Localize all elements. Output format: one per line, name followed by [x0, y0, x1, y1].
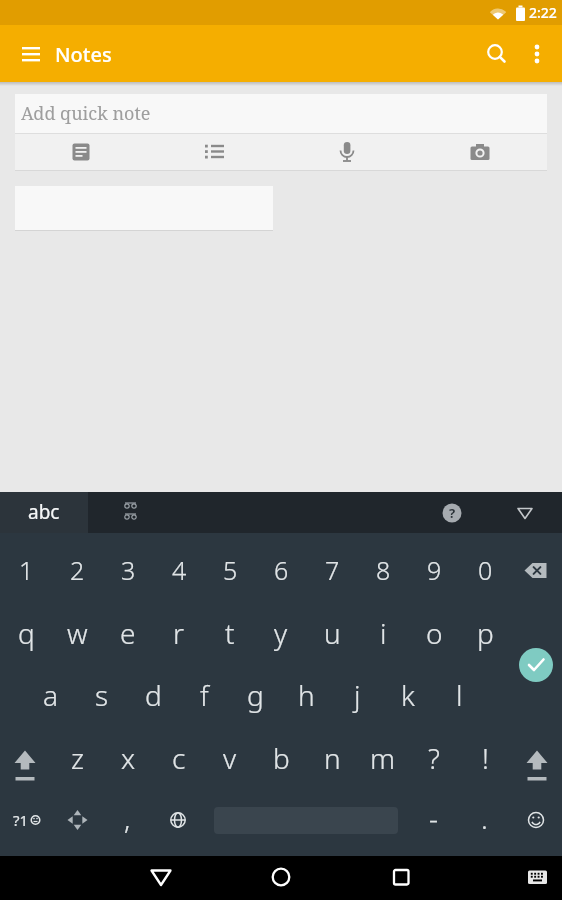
staticText: d: [145, 676, 162, 714]
button[interactable]: j: [332, 667, 382, 723]
staticText: ?: [449, 504, 456, 522]
staticText: f: [200, 676, 209, 714]
button[interactable]: 3: [103, 542, 153, 598]
button[interactable]: i: [358, 605, 408, 661]
button[interactable]: 2: [52, 542, 102, 598]
staticText: 2:22: [529, 3, 557, 22]
button[interactable]: l: [434, 667, 484, 723]
staticText: v: [223, 739, 237, 777]
button[interactable]: 8: [358, 542, 408, 598]
staticText: !: [482, 739, 489, 777]
staticText: 2: [70, 553, 85, 587]
staticText: s: [95, 676, 109, 714]
button[interactable]: [88, 492, 173, 533]
staticText: y: [274, 614, 288, 652]
button[interactable]: 0: [460, 542, 510, 598]
staticText: b: [273, 739, 290, 777]
button[interactable]: g: [230, 667, 280, 723]
button[interactable]: m: [358, 730, 408, 786]
button[interactable]: r: [154, 605, 204, 661]
button[interactable]: n: [307, 730, 357, 786]
staticText: a: [43, 676, 59, 714]
staticText: i: [380, 614, 387, 652]
button[interactable]: .: [464, 790, 504, 846]
button[interactable]: ,: [107, 790, 147, 846]
button[interactable]: 9: [409, 542, 459, 598]
button[interactable]: [160, 795, 198, 845]
button[interactable]: 6: [256, 542, 306, 598]
button[interactable]: q: [1, 605, 51, 661]
button[interactable]: w: [52, 605, 102, 661]
button[interactable]: [517, 857, 557, 899]
button[interactable]: 4: [154, 542, 204, 598]
button[interactable]: d: [128, 667, 178, 723]
button[interactable]: f: [179, 667, 229, 723]
button[interactable]: [479, 36, 515, 72]
button[interactable]: 7: [307, 542, 357, 598]
staticText: 8: [376, 553, 391, 587]
button[interactable]: s: [77, 667, 127, 723]
button[interactable]: [514, 545, 560, 595]
button[interactable]: p: [460, 605, 510, 661]
staticText: 3: [121, 553, 136, 587]
staticText: Add quick note: [21, 101, 151, 126]
button[interactable]: [381, 857, 421, 899]
staticText: Notes: [55, 41, 112, 68]
button[interactable]: [141, 857, 181, 899]
staticText: 4: [172, 553, 187, 587]
button[interactable]: u: [307, 605, 357, 661]
staticText: ,: [124, 799, 131, 837]
button[interactable]: [13, 36, 49, 72]
staticText: 6: [274, 553, 289, 587]
staticText: q: [18, 614, 35, 652]
button[interactable]: [518, 795, 556, 845]
button[interactable]: [514, 730, 560, 786]
staticText: ?1: [13, 810, 29, 830]
staticText: e: [120, 614, 136, 652]
button[interactable]: y: [256, 605, 306, 661]
staticText: g: [247, 676, 264, 714]
button[interactable]: k: [383, 667, 433, 723]
button[interactable]: [261, 857, 301, 899]
button[interactable]: !: [460, 730, 510, 786]
button[interactable]: b: [256, 730, 306, 786]
button[interactable]: [60, 795, 98, 845]
button[interactable]: t: [205, 605, 255, 661]
button[interactable]: z: [52, 730, 102, 786]
staticText: x: [121, 739, 136, 777]
staticText: r: [173, 614, 185, 652]
button[interactable]: [63, 134, 99, 170]
staticText: l: [456, 676, 463, 714]
button[interactable]: o: [409, 605, 459, 661]
button[interactable]: [462, 134, 498, 170]
staticText: p: [477, 614, 494, 652]
button[interactable]: 5: [205, 542, 255, 598]
button[interactable]: [196, 134, 232, 170]
button[interactable]: -: [414, 790, 454, 846]
button[interactable]: ?1: [6, 800, 36, 840]
button[interactable]: e: [103, 605, 153, 661]
button[interactable]: c: [154, 730, 204, 786]
button[interactable]: 1: [1, 542, 51, 598]
staticText: k: [401, 676, 415, 714]
staticText: o: [426, 614, 443, 652]
button[interactable]: h: [281, 667, 331, 723]
button[interactable]: [519, 648, 553, 682]
staticText: 9: [427, 553, 442, 587]
button[interactable]: [329, 134, 365, 170]
button[interactable]: a: [26, 667, 76, 723]
staticText: -: [429, 799, 439, 837]
button[interactable]: [519, 36, 555, 72]
button[interactable]: ?: [409, 730, 459, 786]
staticText: t: [225, 614, 235, 652]
button[interactable]: v: [205, 730, 255, 786]
staticText: 7: [325, 553, 340, 587]
button[interactable]: [15, 94, 547, 133]
button[interactable]: [2, 730, 48, 786]
staticText: 0: [478, 553, 493, 587]
staticText: m: [370, 739, 396, 777]
button[interactable]: [0, 492, 88, 533]
button[interactable]: x: [103, 730, 153, 786]
